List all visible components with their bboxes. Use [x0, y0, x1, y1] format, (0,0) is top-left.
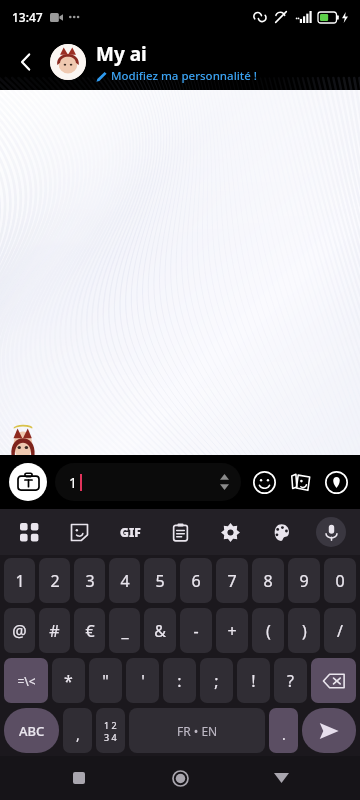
staticText: 9 [299, 570, 309, 592]
button[interactable]: ! [237, 658, 270, 703]
button[interactable]: , [63, 708, 92, 753]
button[interactable]: - [180, 608, 212, 653]
staticText: # [49, 620, 60, 642]
button[interactable]: Location [321, 467, 351, 497]
staticText: ; [214, 670, 219, 692]
staticText: 1 [15, 570, 25, 592]
staticText: My ai [96, 41, 147, 67]
staticText: =\< [17, 673, 36, 689]
button[interactable]: Home [158, 756, 202, 800]
button[interactable]: FR • EN [129, 708, 265, 753]
staticText: _ [121, 620, 129, 642]
button[interactable]: Numbers [96, 708, 125, 753]
button[interactable]: Theme [266, 517, 296, 547]
staticText: 3 [85, 570, 95, 592]
staticText: " [102, 670, 109, 692]
staticText: € [85, 620, 95, 642]
staticText: 6 [191, 570, 201, 592]
button[interactable]: ( [252, 608, 284, 653]
staticText: 8 [263, 570, 273, 592]
staticText: / [337, 620, 343, 642]
button[interactable]: & [144, 608, 176, 653]
button[interactable]: 9 [288, 558, 320, 603]
button[interactable]: / [324, 608, 356, 653]
staticText: 4 [120, 570, 130, 592]
staticText: 5 [155, 570, 165, 592]
staticText: ' [141, 670, 145, 692]
staticText: ) [302, 620, 307, 642]
button[interactable]: * [52, 658, 85, 703]
staticText: - [193, 620, 199, 642]
staticText: 3 4 [104, 731, 117, 743]
staticText: ! [251, 670, 256, 692]
staticText: * [64, 670, 73, 692]
button[interactable]: GIF [115, 517, 145, 547]
button[interactable]: 2 [39, 558, 70, 603]
staticText: FR • EN [177, 723, 218, 739]
button[interactable]: 3 [74, 558, 105, 603]
staticText: 2 [50, 570, 60, 592]
button[interactable]: Send [302, 708, 356, 753]
staticText: , [76, 725, 80, 744]
button[interactable]: # [39, 608, 70, 653]
button[interactable]: 1 [4, 558, 35, 603]
staticText: 7 [227, 570, 237, 592]
button[interactable]: 1 [55, 463, 241, 501]
staticText: 0 [335, 570, 345, 592]
button[interactable]: ) [288, 608, 320, 653]
button[interactable]: ' [126, 658, 159, 703]
button[interactable]: € [74, 608, 105, 653]
button[interactable]: Stickers [285, 467, 315, 497]
button[interactable]: Apps [14, 517, 44, 547]
button[interactable]: ABC [4, 708, 59, 753]
staticText: ABC [19, 722, 45, 740]
button[interactable]: + [216, 608, 248, 653]
button[interactable]: 4 [109, 558, 140, 603]
staticText: GIF [120, 524, 141, 540]
button[interactable]: @ [4, 608, 35, 653]
staticText: ( [266, 620, 271, 642]
staticText: . [282, 725, 286, 744]
button[interactable]: Settings [215, 517, 245, 547]
staticText: Modifiez ma personnalité ! [111, 68, 257, 84]
button[interactable]: ? [274, 658, 307, 703]
button[interactable]: =\< [4, 658, 48, 703]
button[interactable]: Emoji [249, 467, 279, 497]
button[interactable]: Back [6, 42, 46, 82]
button[interactable]: 6 [180, 558, 212, 603]
button[interactable]: Voice input [316, 517, 346, 547]
staticText: + [227, 620, 237, 642]
button[interactable]: _ [109, 608, 140, 653]
staticText: & [154, 620, 166, 642]
button[interactable]: Backspace [311, 658, 356, 703]
staticText: @ [12, 620, 27, 642]
button[interactable]: Sticker [64, 517, 94, 547]
button[interactable]: Clipboard [165, 517, 195, 547]
staticText: : [177, 670, 182, 692]
button[interactable]: 7 [216, 558, 248, 603]
button[interactable]: My ai [96, 41, 257, 84]
staticText: 13:47 [12, 9, 43, 25]
staticText: 1 2 [104, 719, 117, 731]
staticText: ? [287, 670, 294, 692]
button[interactable]: : [163, 658, 196, 703]
button[interactable]: . [269, 708, 298, 753]
button[interactable]: Camera [9, 463, 47, 501]
button[interactable] [50, 44, 86, 80]
button[interactable]: " [89, 658, 122, 703]
staticText: 1 [69, 473, 78, 492]
button[interactable]: Recents [57, 756, 101, 800]
button[interactable]: 0 [324, 558, 356, 603]
button[interactable]: ; [200, 658, 233, 703]
button[interactable]: 8 [252, 558, 284, 603]
button[interactable]: Back [259, 756, 303, 800]
button[interactable]: 5 [144, 558, 176, 603]
